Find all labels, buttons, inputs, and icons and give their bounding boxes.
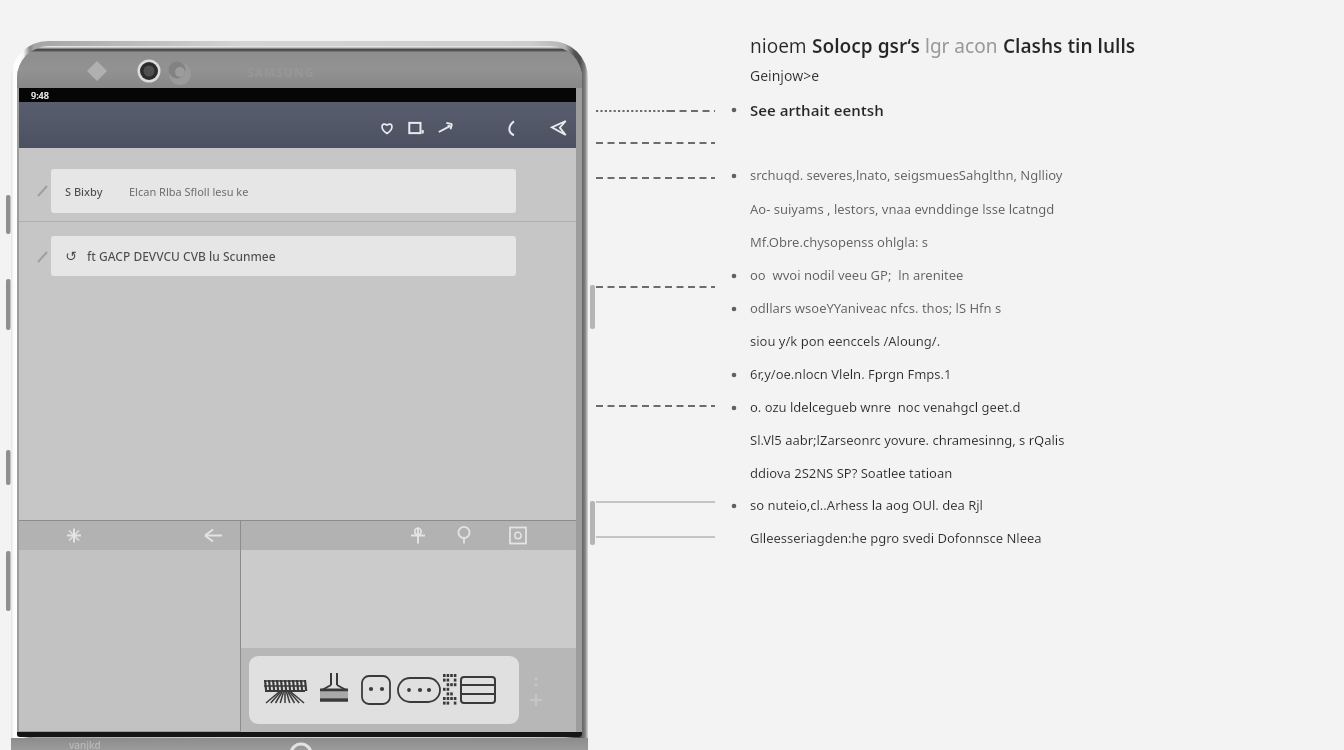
staticText: 6r,y/oe.nlocn Vleln. Fprgn Fmps.1 [750,365,952,383]
staticText: Solocp gsr‘s [812,33,925,59]
button[interactable]: Share [432,114,460,142]
staticText: vanjkd [69,738,101,750]
staticText: odllars wsoeYYaniveac nfcs. thos; lS Hfn… [750,299,1002,317]
staticText: 9:48 [31,89,49,101]
button[interactable]: ↺ [51,236,516,276]
staticText: oo wvoi nodil veeu GP; ln arenitee [750,266,964,284]
staticText: ↺ [65,248,77,264]
staticText: Ao- suiyams , lestors, vnaa evnddinge ls… [750,200,1055,218]
staticText: SAMSUNG [247,64,315,80]
staticText: Elcan Rlba Sfloll lesu ke [129,184,249,199]
button[interactable]: Send [545,114,573,142]
staticText: nioem [750,33,812,59]
staticText: so nuteio,cl..Arhess la aog OUl. dea Rjl [750,496,983,514]
button[interactable]: Screenshot [402,114,430,142]
button[interactable]: More options [498,114,526,142]
staticText: Geinjow>e [750,66,820,85]
staticText: Mf.Obre.chysopenss ohlgla: s [750,233,929,251]
staticText: ft GACP DEVVCU CVB lu Scunmee [87,248,276,264]
button[interactable]: S Bixby [51,169,516,213]
staticText: srchuqd. severes,lnato, seigsmuesSahglth… [750,166,1063,184]
button[interactable]: Favorite [373,114,401,142]
staticText: See arthait eentsh [750,100,884,120]
staticText: Clashs tin lulls [1003,33,1136,59]
staticText: ddiova 2S2NS SP? Soatlee tatioan [750,464,953,482]
staticText: S Bixby [65,184,103,199]
button[interactable]: Add marker [404,521,432,550]
button[interactable]: Location [450,521,478,550]
button[interactable]: Add [60,521,88,550]
button[interactable]: Payment toolbar [249,656,519,724]
button[interactable]: Capture [504,521,532,550]
staticText: siou y/k pon eenccels /Aloung/. [750,332,941,350]
button[interactable]: Back [199,521,227,550]
staticText: o. ozu ldelcegueb wnre noc venahgcl geet… [750,398,1021,416]
staticText: Glleesseriagden:he pgro svedi Dofonnsce … [750,529,1042,547]
staticText: Sl.Vl5 aabr;lZarseonrc yovure. chramesin… [750,431,1065,449]
staticText: lgr acon [925,33,1003,59]
